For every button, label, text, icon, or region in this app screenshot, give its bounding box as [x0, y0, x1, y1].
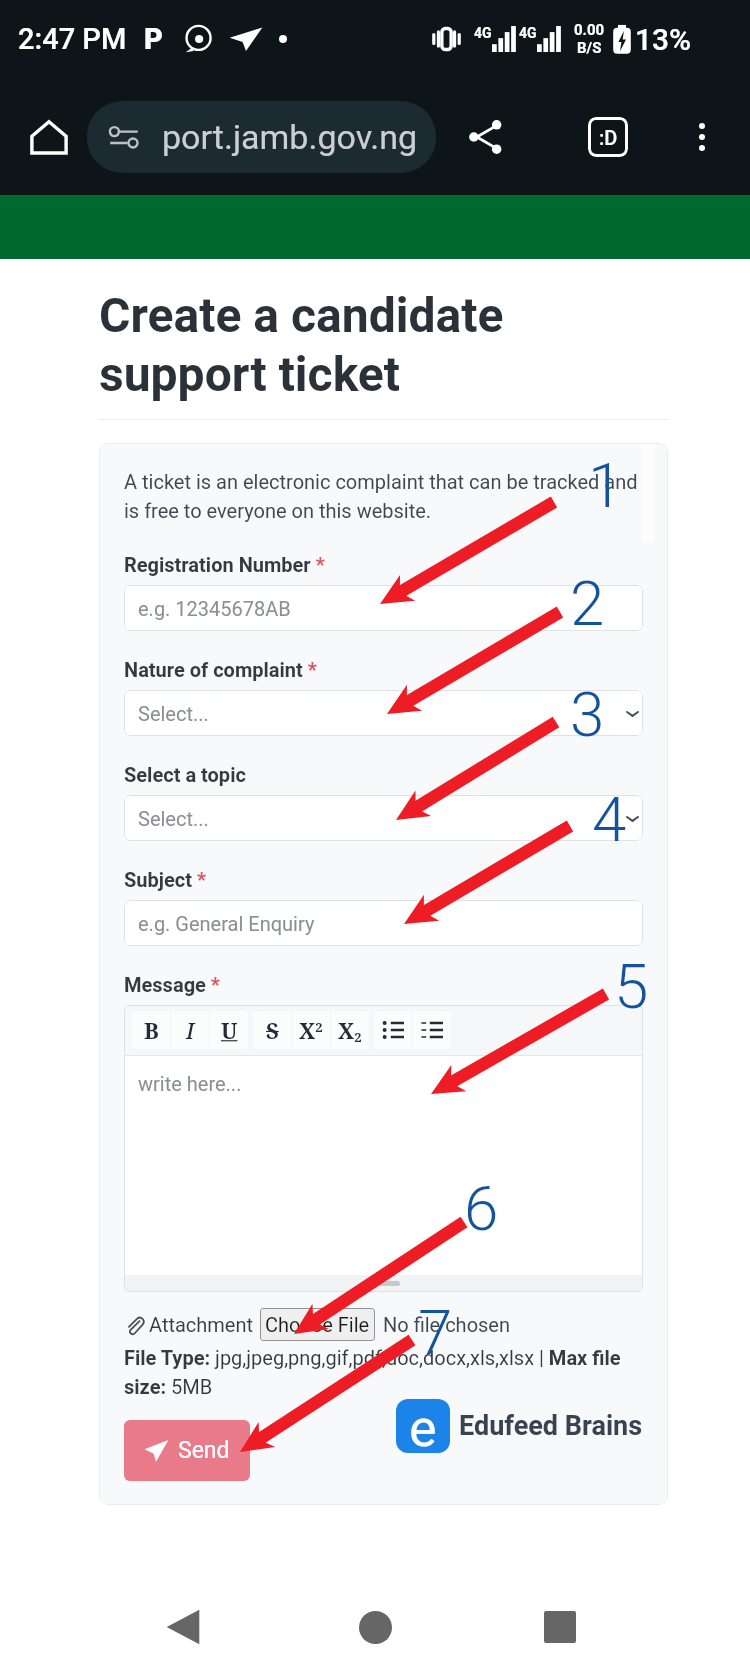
staticText: Select...	[138, 807, 209, 830]
staticText: Subject *	[124, 868, 207, 891]
button[interactable]: Recent apps	[525, 1592, 595, 1662]
staticText: B/S	[577, 39, 602, 57]
button[interactable]: X2	[292, 1011, 330, 1049]
staticText: No file chosen	[383, 1313, 511, 1336]
button[interactable]: X2	[331, 1011, 369, 1049]
staticText: Attachment	[149, 1313, 254, 1336]
button[interactable]	[413, 1011, 451, 1049]
staticText: Nature of complaint *	[124, 658, 317, 681]
staticText: A ticket is an electronic complaint that…	[124, 470, 643, 523]
staticText: e	[409, 1399, 437, 1452]
staticText: Registration Number *	[124, 553, 325, 576]
staticText: e.g. 12345678AB	[138, 597, 291, 620]
button[interactable]: port.jamb.gov.ng	[87, 101, 436, 173]
button[interactable]: e.g. General Enquiry	[124, 900, 643, 946]
staticText: X2	[299, 1015, 323, 1045]
staticText: port.jamb.gov.ng	[162, 117, 418, 157]
staticText: :D	[599, 126, 618, 149]
button[interactable]: Home	[21, 109, 77, 165]
staticText: File Type: jpg,jpeg,png,gif,pdf,doc,docx…	[124, 1346, 643, 1399]
staticText: 2	[570, 567, 605, 640]
staticText: e.g. General Enquiry	[138, 912, 315, 935]
staticText: 6	[464, 1172, 499, 1245]
button[interactable]: Back	[148, 1592, 218, 1662]
button[interactable]: Home	[340, 1592, 410, 1662]
button[interactable]: B	[132, 1011, 170, 1049]
staticText: 1	[588, 449, 623, 522]
staticText: Message *	[124, 973, 220, 996]
button[interactable]: Choose File	[260, 1308, 375, 1341]
staticText: P	[144, 22, 163, 56]
staticText: Edufeed Brains	[459, 1410, 643, 1442]
staticText: Create a candidate support ticket	[99, 287, 504, 402]
staticText: S	[266, 1015, 279, 1045]
button[interactable]: I	[171, 1011, 209, 1049]
button[interactable]: Select...	[124, 795, 643, 841]
button[interactable]	[374, 1011, 412, 1049]
staticText: X2	[338, 1015, 362, 1046]
staticText: 2:47 PM	[18, 22, 127, 56]
button[interactable]: e.g. 12345678AB	[124, 585, 643, 631]
staticText: Send	[178, 1437, 230, 1464]
staticText: 4	[592, 783, 627, 856]
staticText: 5	[614, 950, 649, 1023]
staticText: 13%	[635, 22, 692, 57]
staticText: 4G	[519, 25, 537, 41]
staticText: Select...	[138, 702, 209, 725]
staticText: B	[144, 1015, 159, 1045]
button[interactable]: S	[253, 1011, 291, 1049]
button[interactable]: Send	[124, 1420, 250, 1481]
staticText: Choose File	[265, 1313, 370, 1336]
button[interactable]: More options	[676, 111, 728, 163]
staticText: I	[186, 1015, 195, 1045]
button[interactable]: Tabs	[580, 109, 636, 165]
staticText: 0.00	[574, 21, 605, 39]
staticText: 4G	[474, 25, 492, 41]
staticText: write here...	[138, 1072, 242, 1095]
button[interactable]: Share	[458, 109, 514, 165]
button[interactable]: U	[210, 1011, 248, 1049]
staticText: 3	[570, 678, 605, 751]
button[interactable]: Select...	[124, 690, 643, 736]
staticText: Select a topic	[124, 763, 246, 786]
staticText: U	[221, 1015, 238, 1045]
staticText: 7	[418, 1296, 453, 1369]
